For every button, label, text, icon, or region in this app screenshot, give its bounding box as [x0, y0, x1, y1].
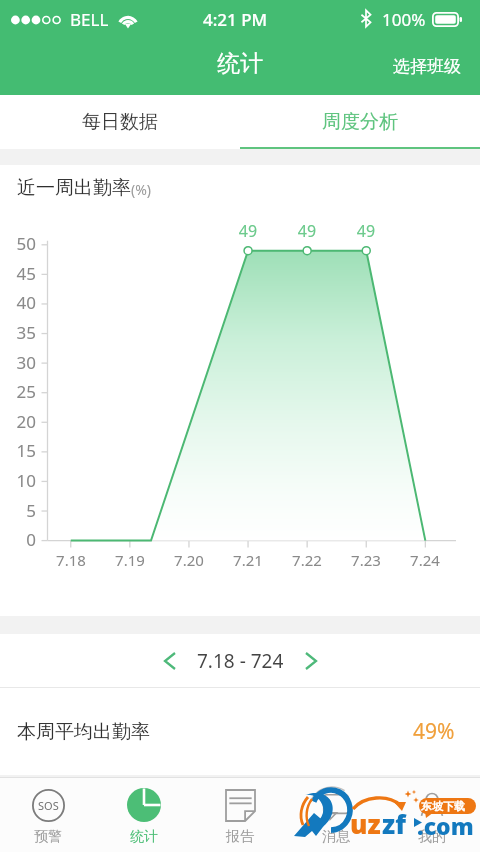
- staticText: 20: [0, 410, 36, 433]
- staticText: 7.20: [167, 550, 211, 570]
- staticText: 周度分析: [322, 110, 398, 134]
- staticText: 7.23: [344, 550, 388, 570]
- staticText: 7.18 - 724: [197, 648, 284, 674]
- staticText: 东坡下载: [421, 799, 465, 813]
- staticText: 49%: [413, 717, 455, 746]
- staticText: 30: [0, 351, 36, 374]
- staticText: 消息: [322, 828, 350, 846]
- button[interactable]: SOS: [0, 778, 96, 852]
- button[interactable]: 选择班级: [377, 42, 480, 91]
- staticText: 统计: [130, 828, 158, 846]
- button[interactable]: 周度分析: [240, 95, 480, 149]
- staticText: 近一周出勤率: [17, 176, 131, 200]
- staticText: 7.24: [403, 550, 447, 570]
- staticText: 45: [0, 262, 36, 285]
- staticText: 49: [285, 220, 329, 242]
- button[interactable]: 报告: [192, 778, 288, 852]
- staticText: 15: [0, 439, 36, 462]
- staticText: (%): [131, 180, 152, 199]
- button[interactable]: 每日数据: [0, 95, 240, 149]
- staticText: 49: [226, 220, 270, 242]
- staticText: 7.19: [108, 550, 152, 570]
- staticText: 35: [0, 321, 36, 344]
- button[interactable]: 本周平均出勤率: [0, 688, 480, 775]
- staticText: 预警: [34, 828, 62, 846]
- staticText: 选择班级: [393, 56, 461, 77]
- button[interactable]: 统计: [96, 778, 192, 852]
- staticText: 100%: [382, 8, 426, 31]
- staticText: 5: [0, 499, 36, 522]
- button[interactable]: Previous week: [150, 639, 190, 683]
- button[interactable]: 消息: [288, 778, 384, 852]
- staticText: SOS: [38, 798, 59, 813]
- staticText: 每日数据: [82, 110, 158, 134]
- staticText: 7.21: [226, 550, 270, 570]
- staticText: 50: [0, 232, 36, 255]
- staticText: BELL: [70, 8, 109, 31]
- button[interactable]: 我的: [384, 778, 480, 852]
- staticText: 我的: [418, 828, 446, 846]
- staticText: 7.22: [285, 550, 329, 570]
- staticText: 40: [0, 291, 36, 314]
- button[interactable]: Next week: [291, 639, 331, 683]
- staticText: 4:21 PM: [203, 8, 268, 31]
- staticText: zf: [382, 806, 406, 841]
- staticText: 0: [0, 528, 36, 551]
- staticText: 7.18: [49, 550, 93, 570]
- staticText: 49: [344, 220, 388, 242]
- staticText: .com: [417, 810, 474, 841]
- staticText: uz: [350, 806, 381, 841]
- staticText: 报告: [226, 828, 254, 846]
- staticText: 本周平均出勤率: [17, 720, 150, 744]
- staticText: 25: [0, 380, 36, 403]
- staticText: 10: [0, 469, 36, 492]
- staticText: 统计: [217, 49, 263, 78]
